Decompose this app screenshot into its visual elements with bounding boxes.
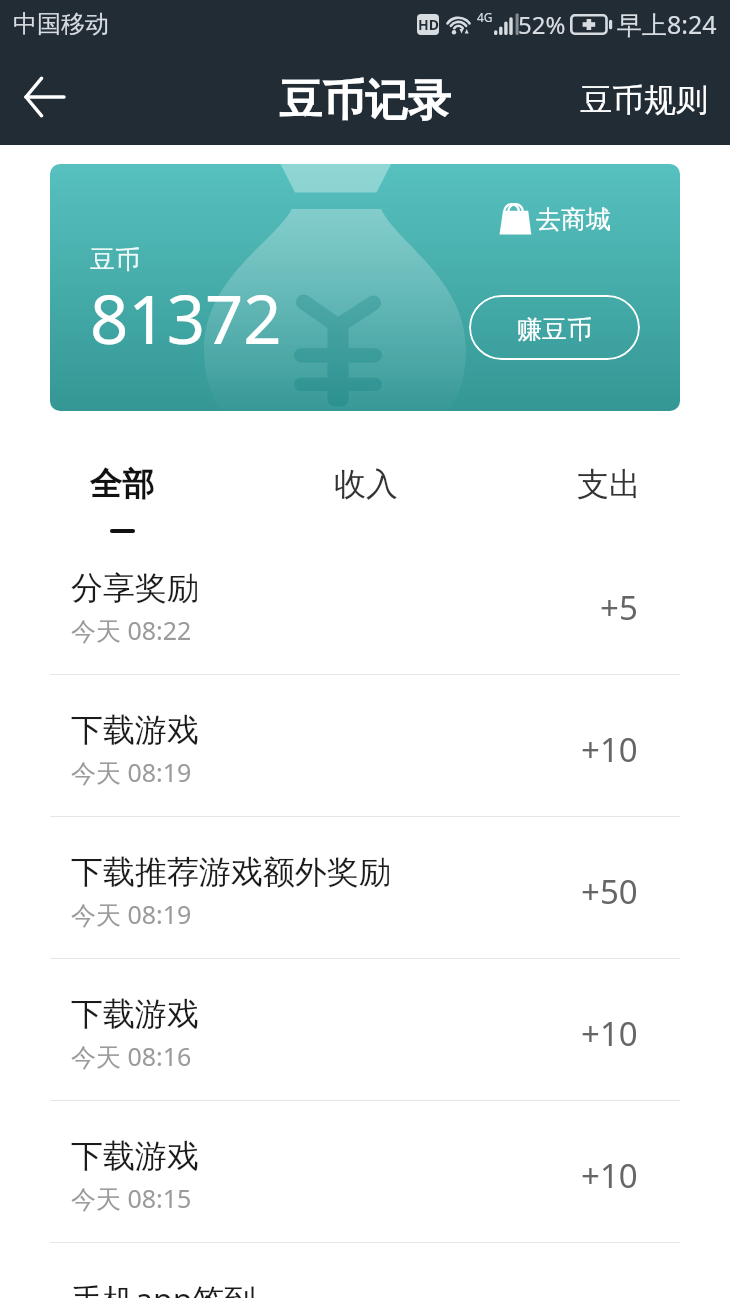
button[interactable]: 去商城 bbox=[500, 203, 611, 235]
button[interactable]: 支出 bbox=[487, 443, 730, 533]
staticText: 下载游戏 bbox=[71, 994, 199, 1034]
staticText: 收入 bbox=[334, 464, 398, 504]
staticText: 下载游戏 bbox=[71, 1136, 199, 1176]
button[interactable]: Back bbox=[0, 48, 90, 145]
staticText: 全部 bbox=[90, 464, 154, 504]
button[interactable]: 手机app签到 bbox=[0, 1243, 730, 1298]
button[interactable]: 下载推荐游戏额外奖励 bbox=[0, 817, 730, 958]
staticText: 豆币 bbox=[90, 244, 140, 275]
staticText: 下载推荐游戏额外奖励 bbox=[71, 852, 391, 892]
staticText: 豆币规则 bbox=[580, 80, 708, 120]
staticText: 今天 08:19 bbox=[71, 755, 192, 789]
staticText: 支出 bbox=[577, 464, 641, 504]
staticText: HD bbox=[418, 15, 439, 34]
staticText: 今天 08:15 bbox=[71, 1181, 192, 1215]
staticText: 早上8:24 bbox=[617, 7, 717, 41]
staticText: 分享奖励 bbox=[71, 568, 199, 608]
staticText: +50 bbox=[581, 869, 638, 914]
staticText: +10 bbox=[581, 727, 638, 772]
staticText: 4G bbox=[477, 9, 493, 25]
button[interactable]: 赚豆币 bbox=[469, 295, 640, 360]
button[interactable]: 豆币规则 bbox=[558, 48, 730, 145]
staticText: 今天 08:22 bbox=[71, 613, 192, 647]
button[interactable]: 下载游戏 bbox=[0, 959, 730, 1100]
staticText: 去商城 bbox=[536, 204, 611, 235]
button[interactable]: 下载游戏 bbox=[0, 1101, 730, 1242]
staticText: 今天 08:19 bbox=[71, 897, 192, 931]
staticText: +5 bbox=[600, 585, 638, 630]
staticText: 下载游戏 bbox=[71, 710, 199, 750]
staticText: 52% bbox=[518, 8, 566, 41]
staticText: 中国移动 bbox=[13, 9, 109, 39]
button[interactable]: 收入 bbox=[244, 443, 487, 533]
button[interactable]: 豆币 bbox=[50, 164, 680, 411]
staticText: 手机app签到 bbox=[71, 1278, 257, 1298]
button[interactable]: 全部 bbox=[0, 443, 244, 533]
staticText: +10 bbox=[581, 1011, 638, 1056]
button[interactable]: 分享奖励 bbox=[0, 533, 730, 674]
staticText: 81372 bbox=[90, 272, 282, 363]
staticText: 赚豆币 bbox=[517, 314, 592, 345]
staticText: +10 bbox=[581, 1153, 638, 1198]
staticText: 豆币记录 bbox=[279, 74, 451, 128]
staticText: 今天 08:16 bbox=[71, 1039, 192, 1073]
button[interactable]: 下载游戏 bbox=[0, 675, 730, 816]
